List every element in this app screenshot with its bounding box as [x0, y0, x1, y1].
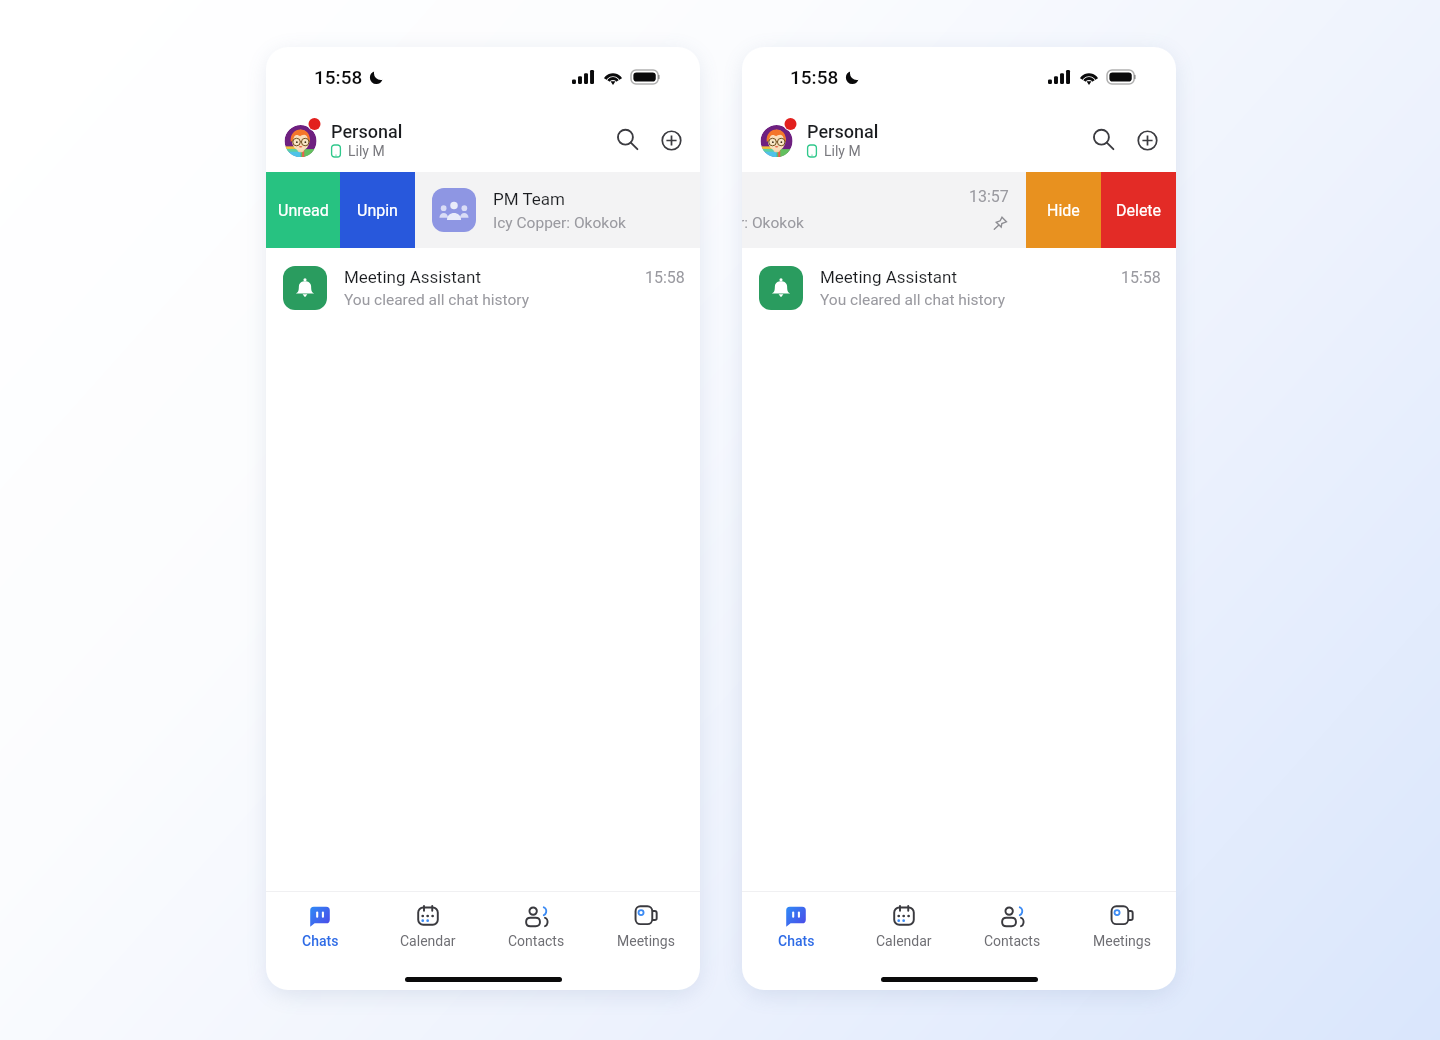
staticText: 15:58	[314, 66, 363, 88]
button[interactable]: PM Team	[415, 172, 700, 248]
staticText: 15:58	[790, 66, 839, 88]
button[interactable]: Search	[607, 120, 647, 160]
button[interactable]: Delete	[1101, 172, 1176, 248]
button[interactable]: Meetings	[1067, 892, 1176, 956]
staticText: 15:58	[1121, 268, 1161, 287]
staticText: 15:58	[645, 268, 685, 287]
staticText: Unread	[278, 201, 329, 220]
staticText: PM Team	[493, 189, 565, 209]
button[interactable]: Calendar	[374, 892, 482, 956]
staticText: You cleared all chat history	[344, 291, 530, 309]
staticText: Meeting Assistant	[820, 267, 958, 287]
button[interactable]: Chats	[266, 892, 374, 956]
button[interactable]: Hide	[1026, 172, 1101, 248]
staticText: Icy Copper: Okokok	[742, 214, 804, 232]
button[interactable]: Meeting Assistant	[266, 248, 700, 327]
staticText: Calendar	[400, 933, 456, 949]
staticText: Icy Copper: Okokok	[493, 214, 626, 232]
staticText: Delete	[1116, 201, 1162, 220]
button[interactable]: New chat	[1127, 120, 1167, 160]
button[interactable]: Profile	[285, 120, 319, 160]
button[interactable]: Meetings	[591, 892, 700, 956]
staticText: Personal	[331, 121, 403, 142]
staticText: Contacts	[984, 933, 1041, 949]
button[interactable]: PM Team	[742, 172, 1026, 248]
button[interactable]: Contacts	[482, 892, 591, 956]
staticText: Chats	[778, 933, 815, 949]
button[interactable]: Chats	[742, 892, 850, 956]
staticText: Meetings	[617, 933, 675, 949]
button[interactable]: Calendar	[850, 892, 958, 956]
staticText: Hide	[1047, 201, 1080, 220]
button[interactable]: Search	[1083, 120, 1123, 160]
staticText: Unpin	[357, 201, 398, 220]
staticText: Personal	[807, 121, 879, 142]
staticText: 13:57	[969, 187, 1009, 206]
button[interactable]: Profile	[761, 120, 795, 160]
staticText: Lily M	[824, 143, 861, 159]
staticText: Meeting Assistant	[344, 267, 482, 287]
staticText: Chats	[302, 933, 339, 949]
button[interactable]: Meeting Assistant	[742, 248, 1176, 327]
button[interactable]: New chat	[651, 120, 691, 160]
staticText: Calendar	[876, 933, 932, 949]
button[interactable]: Unread	[266, 172, 340, 248]
staticText: Meetings	[1093, 933, 1151, 949]
staticText: Contacts	[508, 933, 565, 949]
staticText: You cleared all chat history	[820, 291, 1006, 309]
button[interactable]: Contacts	[958, 892, 1067, 956]
staticText: Lily M	[348, 143, 385, 159]
button[interactable]: Unpin	[340, 172, 415, 248]
